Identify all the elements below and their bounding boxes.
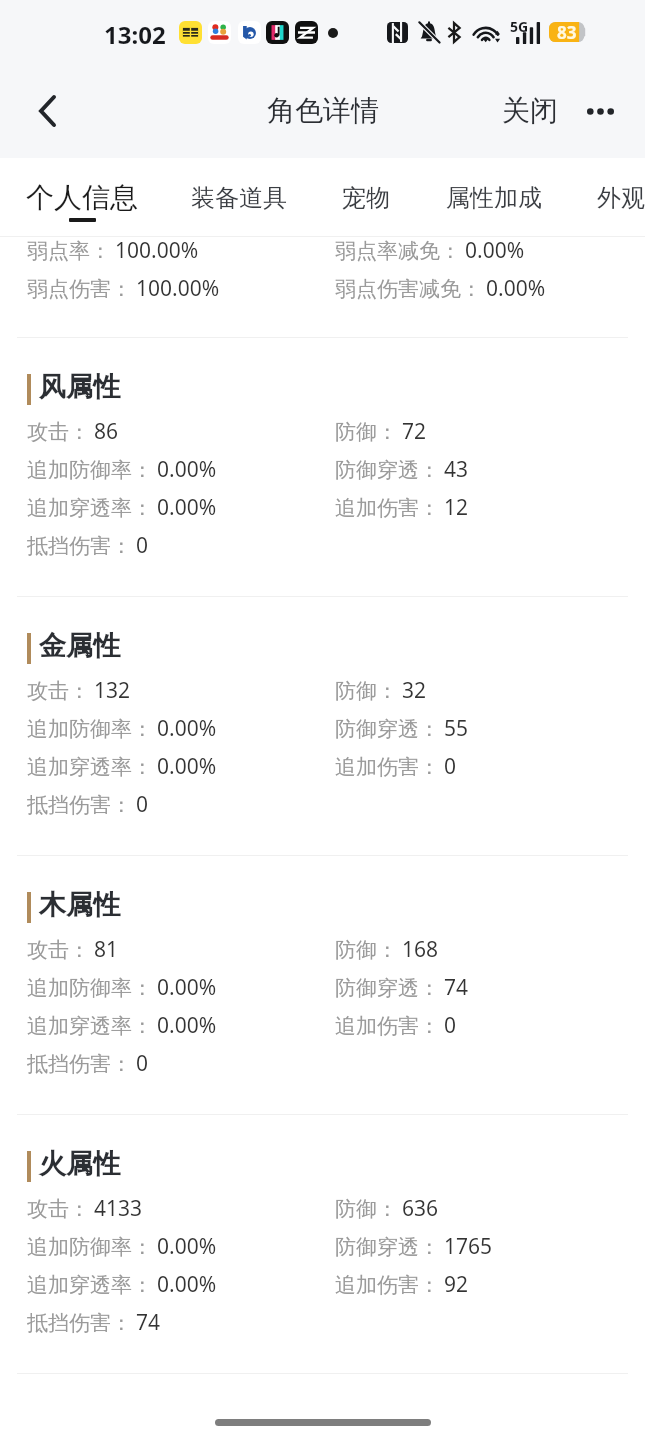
staticText: 防御： — [335, 419, 398, 445]
staticText: 防御穿透： — [335, 716, 440, 742]
staticText: 追加伤害： — [335, 754, 440, 780]
staticText: 86 — [94, 417, 119, 446]
staticText: 0 — [444, 752, 457, 781]
staticText: 81 — [94, 935, 119, 964]
staticText: 防御穿透： — [335, 1234, 440, 1260]
staticText: 100.00% — [136, 274, 220, 303]
button[interactable]: 外观 — [561, 158, 645, 237]
staticText: 弱点伤害减免： — [335, 276, 482, 302]
staticText: 0.00% — [157, 714, 217, 743]
staticText: 抵挡伤害： — [27, 792, 132, 818]
staticText: 抵挡伤害： — [27, 1310, 132, 1336]
staticText: 100.00% — [115, 237, 199, 265]
staticText: 弱点率： — [27, 238, 111, 264]
staticText: 追加穿透率： — [27, 1013, 153, 1039]
button[interactable]: 更多 — [582, 93, 618, 129]
staticText: 攻击： — [27, 1196, 90, 1222]
staticText: 属性加成 — [446, 183, 542, 213]
staticText: 168 — [402, 935, 439, 964]
staticText: 132 — [94, 676, 131, 705]
staticText: 抵挡伤害： — [27, 1051, 132, 1077]
staticText: 攻击： — [27, 419, 90, 445]
staticText: 0 — [136, 531, 149, 560]
staticText: 防御： — [335, 1196, 398, 1222]
staticText: 追加防御率： — [27, 716, 153, 742]
staticText: 防御穿透： — [335, 457, 440, 483]
staticText: 风属性 — [39, 370, 120, 404]
button[interactable]: 装备道具 — [179, 158, 299, 237]
staticText: 追加防御率： — [27, 457, 153, 483]
staticText: 0.00% — [157, 752, 217, 781]
staticText: 12 — [444, 493, 469, 522]
staticText: 32 — [402, 676, 427, 705]
staticText: 4133 — [94, 1194, 143, 1223]
button[interactable]: 宠物 — [306, 158, 426, 237]
staticText: 0 — [136, 1049, 149, 1078]
staticText: 72 — [402, 417, 427, 446]
staticText: 金属性 — [39, 629, 120, 663]
staticText: 0 — [444, 1011, 457, 1040]
staticText: 外观 — [597, 183, 645, 213]
staticText: 个人信息 — [26, 180, 138, 215]
staticText: 追加伤害： — [335, 1013, 440, 1039]
staticText: 0.00% — [157, 455, 217, 484]
staticText: 关闭 — [502, 93, 558, 128]
staticText: 抵挡伤害： — [27, 533, 132, 559]
staticText: 0.00% — [157, 1270, 217, 1299]
staticText: 木属性 — [39, 888, 120, 922]
staticText: 火属性 — [39, 1147, 120, 1181]
button[interactable]: 关闭 — [498, 83, 562, 138]
staticText: 43 — [444, 455, 469, 484]
staticText: 636 — [402, 1194, 439, 1223]
staticText: 防御： — [335, 678, 398, 704]
staticText: 74 — [136, 1308, 161, 1337]
staticText: 13:02 — [104, 18, 166, 51]
staticText: 追加防御率： — [27, 975, 153, 1001]
staticText: 弱点率减免： — [335, 238, 461, 264]
staticText: 追加穿透率： — [27, 495, 153, 521]
staticText: 1765 — [444, 1232, 493, 1261]
staticText: 0.00% — [157, 493, 217, 522]
staticText: 追加伤害： — [335, 495, 440, 521]
staticText: 0 — [136, 790, 149, 819]
staticText: 攻击： — [27, 678, 90, 704]
staticText: 攻击： — [27, 937, 90, 963]
staticText: 追加伤害： — [335, 1272, 440, 1298]
button[interactable]: 返回 — [13, 77, 81, 145]
staticText: 0.00% — [157, 1011, 217, 1040]
staticText: 92 — [444, 1270, 469, 1299]
staticText: 追加防御率： — [27, 1234, 153, 1260]
button[interactable]: 属性加成 — [434, 158, 554, 237]
staticText: 0.00% — [465, 237, 525, 265]
staticText: 角色详情 — [267, 93, 379, 128]
staticText: 追加穿透率： — [27, 754, 153, 780]
staticText: 防御： — [335, 937, 398, 963]
staticText: 宠物 — [342, 183, 390, 213]
staticText: 74 — [444, 973, 469, 1002]
staticText: 5G — [510, 17, 529, 36]
staticText: 弱点伤害： — [27, 276, 132, 302]
staticText: 55 — [444, 714, 469, 743]
staticText: 装备道具 — [191, 183, 287, 213]
staticText: 0.00% — [157, 1232, 217, 1261]
button[interactable]: 个人信息 — [22, 158, 142, 237]
staticText: 追加穿透率： — [27, 1272, 153, 1298]
staticText: 防御穿透： — [335, 975, 440, 1001]
staticText: 83 — [557, 21, 577, 41]
staticText: 0.00% — [157, 973, 217, 1002]
staticText: 0.00% — [486, 274, 546, 303]
